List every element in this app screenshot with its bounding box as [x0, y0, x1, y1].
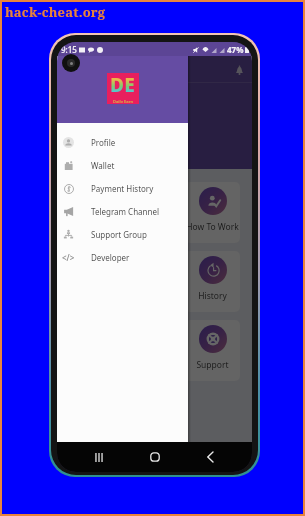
- button[interactable]: Support Group: [57, 223, 188, 246]
- staticText: History: [198, 290, 227, 302]
- button[interactable]: Wallet: [57, 154, 188, 177]
- staticText: Developer: [91, 252, 130, 263]
- button[interactable]: Notifications: [231, 62, 247, 78]
- button[interactable]: Back: [197, 444, 223, 470]
- button[interactable]: Support: [185, 320, 240, 381]
- staticText: hack-cheat.org: [5, 3, 106, 21]
- button[interactable]: Refer: [64, 251, 120, 312]
- staticText: Support: [196, 359, 229, 371]
- button[interactable]: Profile: [57, 131, 188, 154]
- staticText: Deposit: [77, 221, 108, 233]
- button[interactable]: How To Work: [185, 182, 240, 243]
- button[interactable]: </>: [57, 246, 188, 269]
- button[interactable]: Recents: [86, 444, 112, 470]
- button[interactable]: Payment History: [57, 177, 188, 200]
- button[interactable]: History: [185, 251, 240, 312]
- staticText: </>: [62, 252, 75, 263]
- staticText: How To Work: [186, 221, 239, 233]
- staticText: Telegram Channel: [91, 206, 160, 217]
- staticText: 9:15: [61, 44, 77, 55]
- staticText: Support Group: [91, 229, 147, 240]
- staticText: Profile: [91, 137, 116, 148]
- button[interactable]: Telegram Channel: [57, 200, 188, 223]
- button[interactable]: Withdraw: [125, 182, 180, 243]
- staticText: DE: [110, 72, 136, 98]
- staticText: 47%: [227, 44, 244, 55]
- button[interactable]: Home: [142, 444, 168, 470]
- staticText: Wallet: [91, 160, 115, 171]
- staticText: Payment History: [91, 183, 154, 194]
- button[interactable]: Leaderboard: [125, 251, 180, 312]
- staticText: Daily Earn: [113, 99, 134, 103]
- button[interactable]: Deposit: [64, 182, 120, 243]
